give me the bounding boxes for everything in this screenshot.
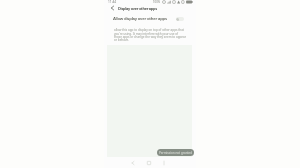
button[interactable]: Recent apps: [161, 160, 167, 166]
staticText: Allow display over other apps: [113, 16, 167, 22]
staticText: 11:44: [108, 0, 117, 4]
button[interactable]: Back: [130, 160, 136, 166]
staticText: Permission not granted: [159, 151, 193, 155]
button[interactable]: Permission not granted: [157, 149, 194, 156]
staticText: Display over other apps: [118, 6, 157, 11]
staticText: allow this app to display on top of othe…: [114, 28, 192, 42]
staticText: 100%: [153, 0, 161, 4]
button[interactable]: Allow display over other apps: [104, 14, 196, 24]
button[interactable]: Home: [146, 160, 152, 166]
button[interactable]: Navigate up: [108, 4, 116, 12]
